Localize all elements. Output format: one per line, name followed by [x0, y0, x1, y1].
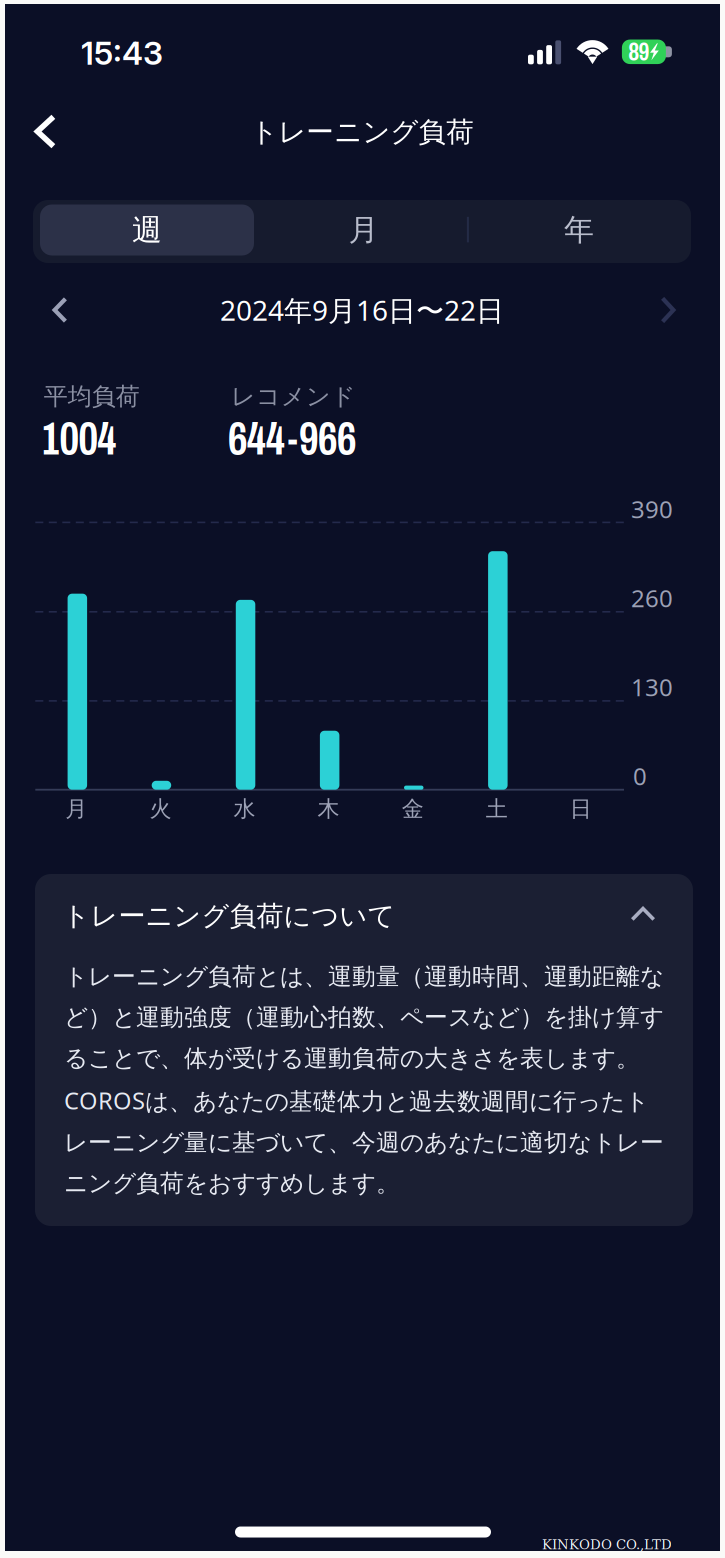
- staticText: 木: [318, 795, 340, 823]
- staticText: 平均負荷: [44, 381, 140, 412]
- staticText: 1004: [42, 413, 116, 464]
- button[interactable]: 戻る: [13, 99, 77, 163]
- staticText: 火: [149, 795, 171, 823]
- staticText: 130: [631, 671, 673, 703]
- button[interactable]: 月: [256, 204, 470, 255]
- staticText: 390: [631, 493, 673, 525]
- staticText: 2024年9月16日〜22日: [220, 291, 504, 329]
- button[interactable]: トレーニング負荷について: [70, 881, 692, 947]
- staticText: 644-966: [228, 413, 356, 464]
- staticText: 89: [628, 38, 649, 66]
- staticText: 土: [486, 795, 508, 823]
- staticText: レコメンド: [231, 381, 356, 412]
- staticText: トレーニング負荷とは、運動量（運動時間、運動距離など）と運動強度（運動心拍数、ペ…: [64, 962, 664, 1198]
- button[interactable]: 年: [472, 204, 686, 255]
- button[interactable]: 週: [40, 204, 254, 255]
- staticText: 年: [564, 211, 594, 249]
- staticText: 15:43: [81, 34, 163, 72]
- staticText: 日: [570, 795, 592, 823]
- staticText: 週: [132, 211, 162, 249]
- staticText: 水: [233, 795, 255, 823]
- staticText: トレーニング負荷について: [62, 899, 395, 933]
- staticText: 月: [348, 211, 378, 249]
- button[interactable]: 前の週: [32, 282, 88, 338]
- staticText: KINKODO CO.,LTD: [542, 1537, 672, 1552]
- staticText: トレーニング負荷: [250, 115, 474, 149]
- button[interactable]: 次の週: [640, 282, 696, 338]
- staticText: 0: [633, 760, 647, 792]
- staticText: 月: [65, 795, 87, 823]
- staticText: 金: [402, 795, 424, 823]
- staticText: 260: [631, 582, 673, 614]
